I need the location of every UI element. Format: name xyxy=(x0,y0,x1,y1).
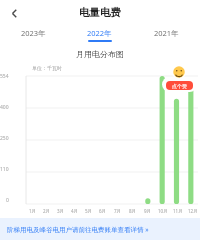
staticText: 2022年 xyxy=(87,28,112,38)
staticText: 11月 xyxy=(173,208,183,214)
staticText: 单位：千瓦时 xyxy=(32,65,62,71)
staticText: 点个赞 xyxy=(172,83,187,89)
staticText: 8月 xyxy=(129,208,137,214)
staticText: 3月 xyxy=(57,208,65,214)
staticText: 110 xyxy=(0,166,9,173)
staticText: 10月 xyxy=(158,208,168,214)
button[interactable]: 返回 xyxy=(4,3,24,23)
staticText: 2月 xyxy=(43,208,51,214)
staticText: 7月 xyxy=(114,208,122,214)
button[interactable]: 2021年 xyxy=(133,25,200,45)
staticText: 12月 xyxy=(188,208,198,214)
staticText: 0 xyxy=(6,197,9,204)
staticText: 月用电分布图 xyxy=(0,49,200,59)
staticText: 4月 xyxy=(71,208,79,214)
staticText: 电量电费 xyxy=(79,6,121,19)
staticText: 2023年 xyxy=(21,28,46,38)
button[interactable]: 2022年 xyxy=(66,25,133,45)
staticText: 2021年 xyxy=(154,28,179,38)
staticText: 400 xyxy=(0,104,9,111)
staticText: 9月 xyxy=(144,208,152,214)
button[interactable]: 2023年 xyxy=(0,25,66,45)
button[interactable]: 阶梯用电及峰谷电用户请前往电费账单查看详情 » xyxy=(0,218,200,240)
staticText: 1月 xyxy=(29,208,37,214)
button[interactable]: 点个赞 xyxy=(160,65,198,92)
staticText: 6月 xyxy=(99,208,107,214)
staticText: 250 xyxy=(0,135,9,142)
staticText: 554 xyxy=(0,73,9,80)
staticText: 5月 xyxy=(85,208,93,214)
staticText: 阶梯用电及峰谷电用户请前往电费账单查看详情 » xyxy=(7,225,149,234)
